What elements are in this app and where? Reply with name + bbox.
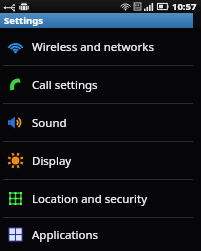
staticText: 10:57 bbox=[172, 0, 197, 13]
staticText: Wireless and networks bbox=[32, 39, 154, 55]
staticText: Applications bbox=[32, 227, 99, 243]
button[interactable]: Location and security bbox=[0, 180, 201, 217]
button[interactable]: Sound bbox=[0, 104, 201, 141]
button[interactable]: Display bbox=[0, 142, 201, 179]
button[interactable]: Wireless and networks bbox=[0, 28, 201, 65]
button[interactable]: Call settings bbox=[0, 66, 201, 103]
staticText: Location and security bbox=[32, 191, 148, 207]
staticText: Call settings bbox=[32, 77, 98, 93]
staticText: Display bbox=[32, 153, 72, 169]
button[interactable]: Applications bbox=[0, 218, 201, 251]
staticText: Sound bbox=[32, 115, 67, 131]
staticText: Settings bbox=[4, 14, 43, 27]
